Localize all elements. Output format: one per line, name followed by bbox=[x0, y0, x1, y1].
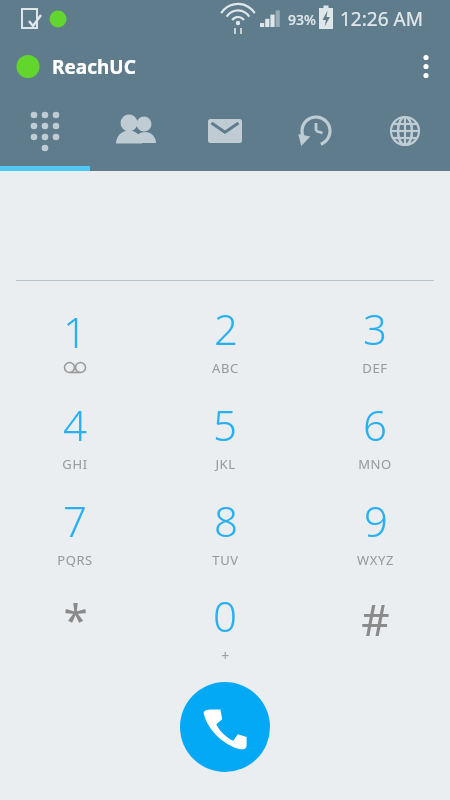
staticText: DEF bbox=[362, 359, 388, 377]
button[interactable]: 3 bbox=[300, 290, 450, 386]
button[interactable]: Recent calls bbox=[270, 95, 360, 166]
staticText: 8 bbox=[214, 492, 238, 549]
button[interactable]: Web bbox=[360, 95, 450, 166]
button[interactable]: More options bbox=[402, 38, 450, 95]
staticText: 6 bbox=[363, 396, 387, 453]
button[interactable]: Contacts bbox=[90, 95, 180, 166]
staticText: 3 bbox=[363, 300, 387, 357]
staticText: 0 bbox=[213, 587, 237, 644]
staticText: PQRS bbox=[57, 551, 93, 569]
staticText: ReachUC bbox=[52, 54, 136, 80]
staticText: 1 bbox=[63, 303, 87, 360]
button[interactable]: # bbox=[300, 578, 450, 674]
button[interactable]: Messages bbox=[180, 95, 270, 166]
staticText: 9 bbox=[364, 492, 388, 549]
button[interactable]: 5 bbox=[150, 386, 300, 482]
button[interactable]: 0 bbox=[150, 578, 300, 674]
staticText: 93% bbox=[288, 10, 316, 29]
button[interactable]: 1 bbox=[0, 290, 150, 386]
button[interactable]: 2 bbox=[150, 290, 300, 386]
button[interactable]: * bbox=[0, 578, 150, 674]
button[interactable]: 6 bbox=[300, 386, 450, 482]
staticText: WXYZ bbox=[357, 551, 394, 569]
button[interactable]: 4 bbox=[0, 386, 150, 482]
button[interactable]: 9 bbox=[300, 482, 450, 578]
button[interactable]: 7 bbox=[0, 482, 150, 578]
staticText: 7 bbox=[63, 492, 87, 549]
staticText: 4 bbox=[63, 396, 87, 453]
staticText: TUV bbox=[212, 551, 239, 569]
staticText: 12:26 AM bbox=[340, 6, 423, 32]
staticText: ABC bbox=[212, 359, 239, 377]
button[interactable]: Call bbox=[180, 682, 270, 772]
staticText: JKL bbox=[215, 455, 236, 473]
staticText: 5 bbox=[213, 396, 237, 453]
staticText: + bbox=[221, 646, 230, 665]
staticText: MNO bbox=[358, 455, 392, 473]
button[interactable]: 8 bbox=[150, 482, 300, 578]
staticText: GHI bbox=[62, 455, 88, 473]
button[interactable]: Dialpad bbox=[0, 95, 90, 166]
staticText: # bbox=[361, 589, 390, 649]
staticText: * bbox=[63, 589, 88, 649]
staticText: 2 bbox=[214, 300, 238, 357]
